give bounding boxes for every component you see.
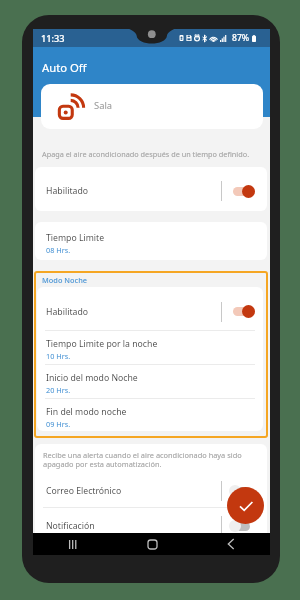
button[interactable]: Recientes — [62, 533, 84, 555]
staticText: Habilitado — [46, 185, 88, 197]
staticText: Notificación — [46, 520, 95, 532]
staticText: Modo Noche — [42, 275, 88, 285]
staticText: Apaga el aire acondicionado después de u… — [42, 149, 250, 159]
staticText: Tiempo Limite por la noche — [46, 338, 158, 350]
button[interactable]: Habilitado — [37, 287, 263, 330]
staticText: 10 Hrs. — [46, 351, 71, 361]
button[interactable]: Correo Electrónico — [35, 473, 267, 507]
button[interactable]: Tiempo Limite — [35, 222, 267, 260]
button[interactable]: Guardar — [227, 487, 264, 524]
staticText: Inicio del modo Noche — [46, 372, 138, 384]
staticText: 87% — [232, 32, 250, 44]
staticText: Tiempo Limite — [46, 232, 105, 244]
button[interactable]: Fin del modo noche — [37, 399, 263, 431]
staticText: 11:33 — [41, 32, 65, 45]
button[interactable]: Notificación — [35, 508, 267, 542]
staticText: Auto Off — [42, 60, 87, 75]
staticText: Correo Electrónico — [46, 485, 122, 497]
staticText: Fin del modo noche — [46, 406, 127, 418]
staticText: Habilitado — [46, 306, 88, 318]
staticText: 20 Hrs. — [46, 385, 71, 395]
button[interactable]: Sala — [41, 84, 263, 129]
staticText: Recibe una alerta cuando el aire acondic… — [43, 450, 242, 469]
staticText: 09 Hrs. — [46, 419, 71, 429]
button[interactable]: Inicio — [141, 533, 163, 555]
button[interactable]: Inicio del modo Noche — [37, 365, 263, 398]
button[interactable]: Atrás — [220, 533, 242, 555]
button[interactable]: Tiempo Limite por la noche — [37, 331, 263, 364]
staticText: 08 Hrs. — [46, 245, 71, 255]
staticText: Sala — [94, 99, 113, 112]
button[interactable]: Habilitado — [35, 167, 267, 211]
